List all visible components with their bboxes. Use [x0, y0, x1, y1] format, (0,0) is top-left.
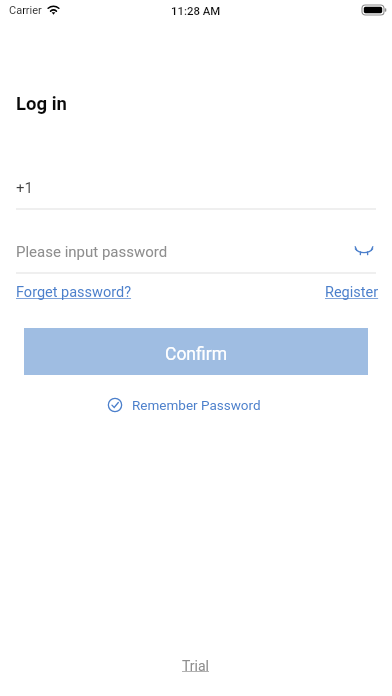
button[interactable]: Remember Password — [103, 393, 261, 417]
staticText: 11:28 AM — [171, 4, 221, 17]
staticText: +1 — [16, 179, 33, 197]
staticText: Carrier — [9, 4, 42, 17]
staticText: Remember Password — [132, 397, 261, 413]
staticText: Trial — [182, 658, 210, 674]
button[interactable]: Show password — [346, 233, 381, 268]
staticText: Register — [325, 284, 379, 301]
button[interactable]: Confirm — [24, 328, 368, 375]
staticText: Confirm — [165, 344, 228, 365]
staticText: Please input password — [16, 243, 168, 261]
button[interactable]: Register — [317, 278, 387, 307]
button[interactable]: Trial — [166, 650, 226, 682]
staticText: Forget password? — [16, 284, 132, 301]
staticText: Log in — [16, 93, 67, 115]
button[interactable]: Forget password? — [8, 278, 140, 307]
